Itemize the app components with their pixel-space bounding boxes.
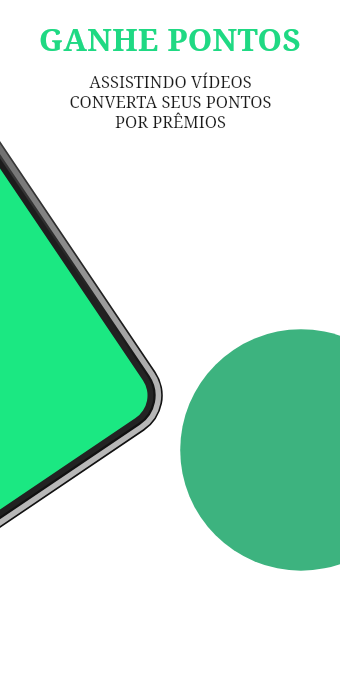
staticText: GANHE PONTOS <box>39 18 301 60</box>
other: Assistir vídeo <box>0 0 340 687</box>
staticText: ASSISTINDO VÍDEOS CONVERTA SEUS PONTOS P… <box>69 70 272 133</box>
button[interactable]: GANHE PONTOS <box>0 18 340 133</box>
